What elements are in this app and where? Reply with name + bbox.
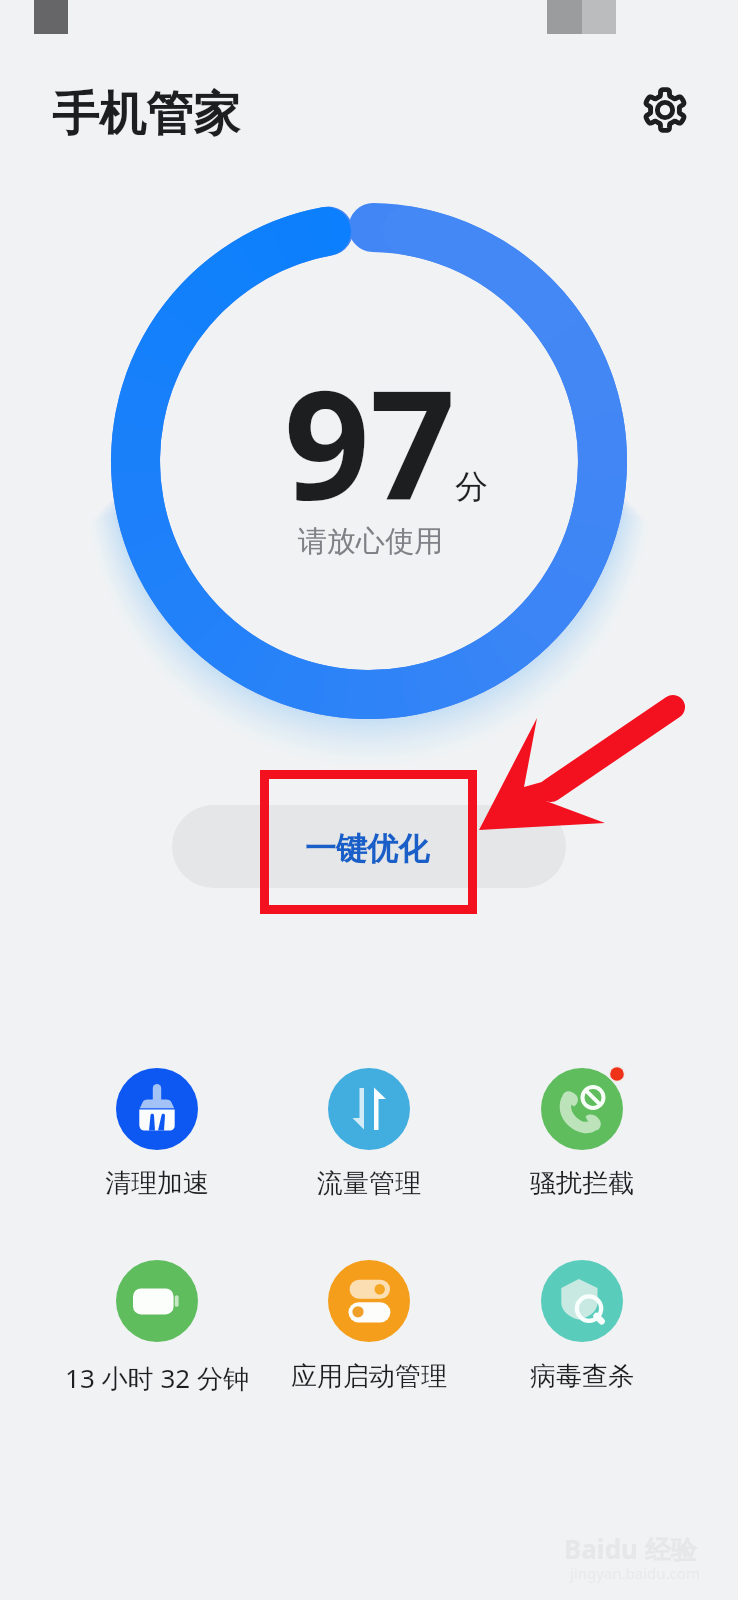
staticText: 流量管理 <box>317 1167 421 1200</box>
button[interactable] <box>529 1248 635 1390</box>
staticText: 病毒查杀 <box>530 1360 634 1393</box>
button[interactable] <box>316 1248 422 1390</box>
staticText: 分 <box>455 466 488 508</box>
staticText: 请放心使用 <box>298 523 443 560</box>
staticText: 骚扰拦截 <box>530 1167 634 1200</box>
staticText: Baidu 经验 <box>564 1531 697 1567</box>
staticText: 13 小时 32 分钟 <box>65 1360 249 1396</box>
staticText: 清理加速 <box>105 1167 209 1200</box>
staticText: 97 <box>284 340 456 544</box>
button[interactable] <box>316 1056 422 1198</box>
staticText: 一键优化 <box>305 829 429 868</box>
button[interactable] <box>529 1056 635 1198</box>
button[interactable] <box>104 1248 210 1390</box>
staticText: 手机管家 <box>52 85 240 144</box>
button[interactable]: 一键优化 <box>172 805 566 888</box>
button[interactable]: Settings <box>631 76 699 144</box>
staticText: 应用启动管理 <box>291 1360 447 1393</box>
button[interactable] <box>104 1056 210 1198</box>
